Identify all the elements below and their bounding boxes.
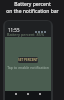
staticText: Battery percent xyxy=(14,1,51,8)
button[interactable]: SET PERCENT xyxy=(18,57,38,63)
staticText: SET PERCENT xyxy=(18,58,38,62)
staticText: Tap to enable notification xyxy=(7,65,49,70)
staticText: 11:55 xyxy=(8,27,20,33)
staticText: Battery percent 85% xyxy=(7,32,45,37)
staticText: on the notification bar xyxy=(6,8,59,15)
